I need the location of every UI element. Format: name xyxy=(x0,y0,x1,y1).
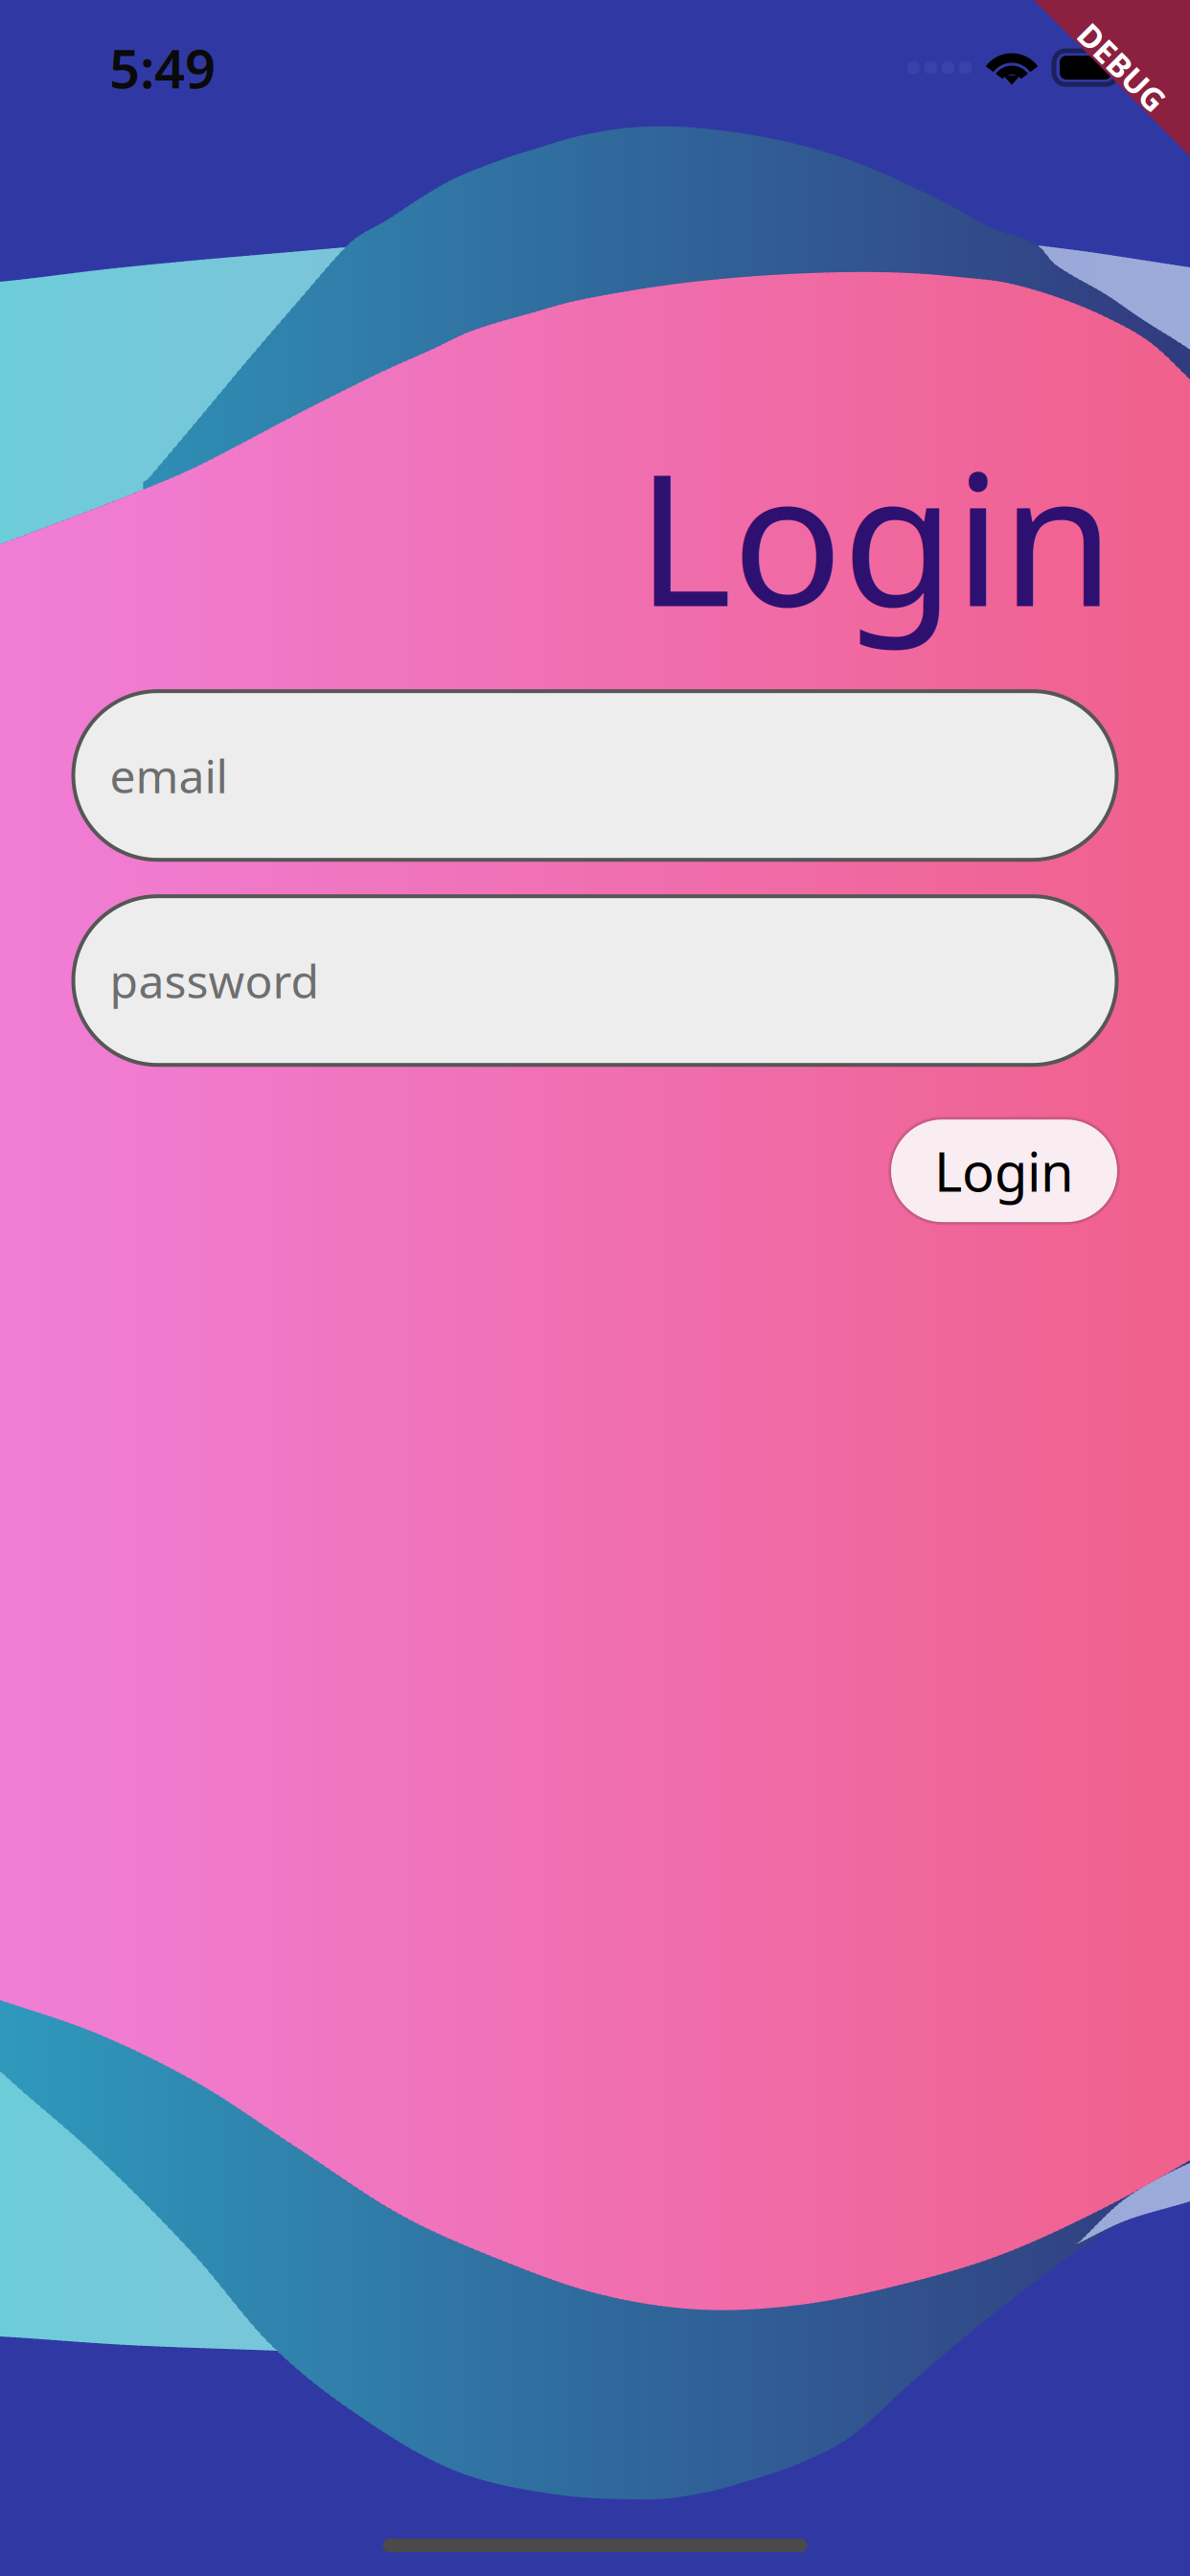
staticText: Login xyxy=(636,414,1114,657)
staticText: email xyxy=(110,745,228,806)
button[interactable]: Login xyxy=(891,1120,1117,1222)
staticText: Login xyxy=(934,1135,1074,1206)
staticText: DEBUG xyxy=(1067,46,1177,88)
staticText: password xyxy=(110,950,320,1011)
staticText: 5:49 xyxy=(109,32,216,103)
